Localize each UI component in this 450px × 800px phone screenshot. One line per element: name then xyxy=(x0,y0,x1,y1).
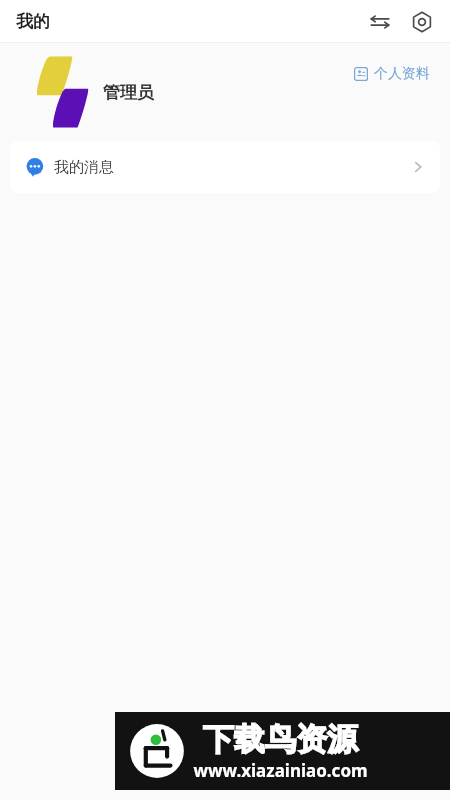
staticText: 下载鸟资源 xyxy=(203,720,358,759)
button[interactable]: Settings xyxy=(404,4,440,40)
button[interactable]: Switch account xyxy=(362,4,398,40)
button[interactable]: 我的消息 xyxy=(10,141,440,193)
staticText: 个人资料 xyxy=(374,65,430,83)
staticText: 管理员 xyxy=(103,82,154,103)
button[interactable]: 个人资料 xyxy=(352,63,432,85)
staticText: www.xiazainiao.com xyxy=(193,759,368,782)
staticText: 我的消息 xyxy=(54,158,114,177)
staticText: 我的 xyxy=(16,11,50,32)
